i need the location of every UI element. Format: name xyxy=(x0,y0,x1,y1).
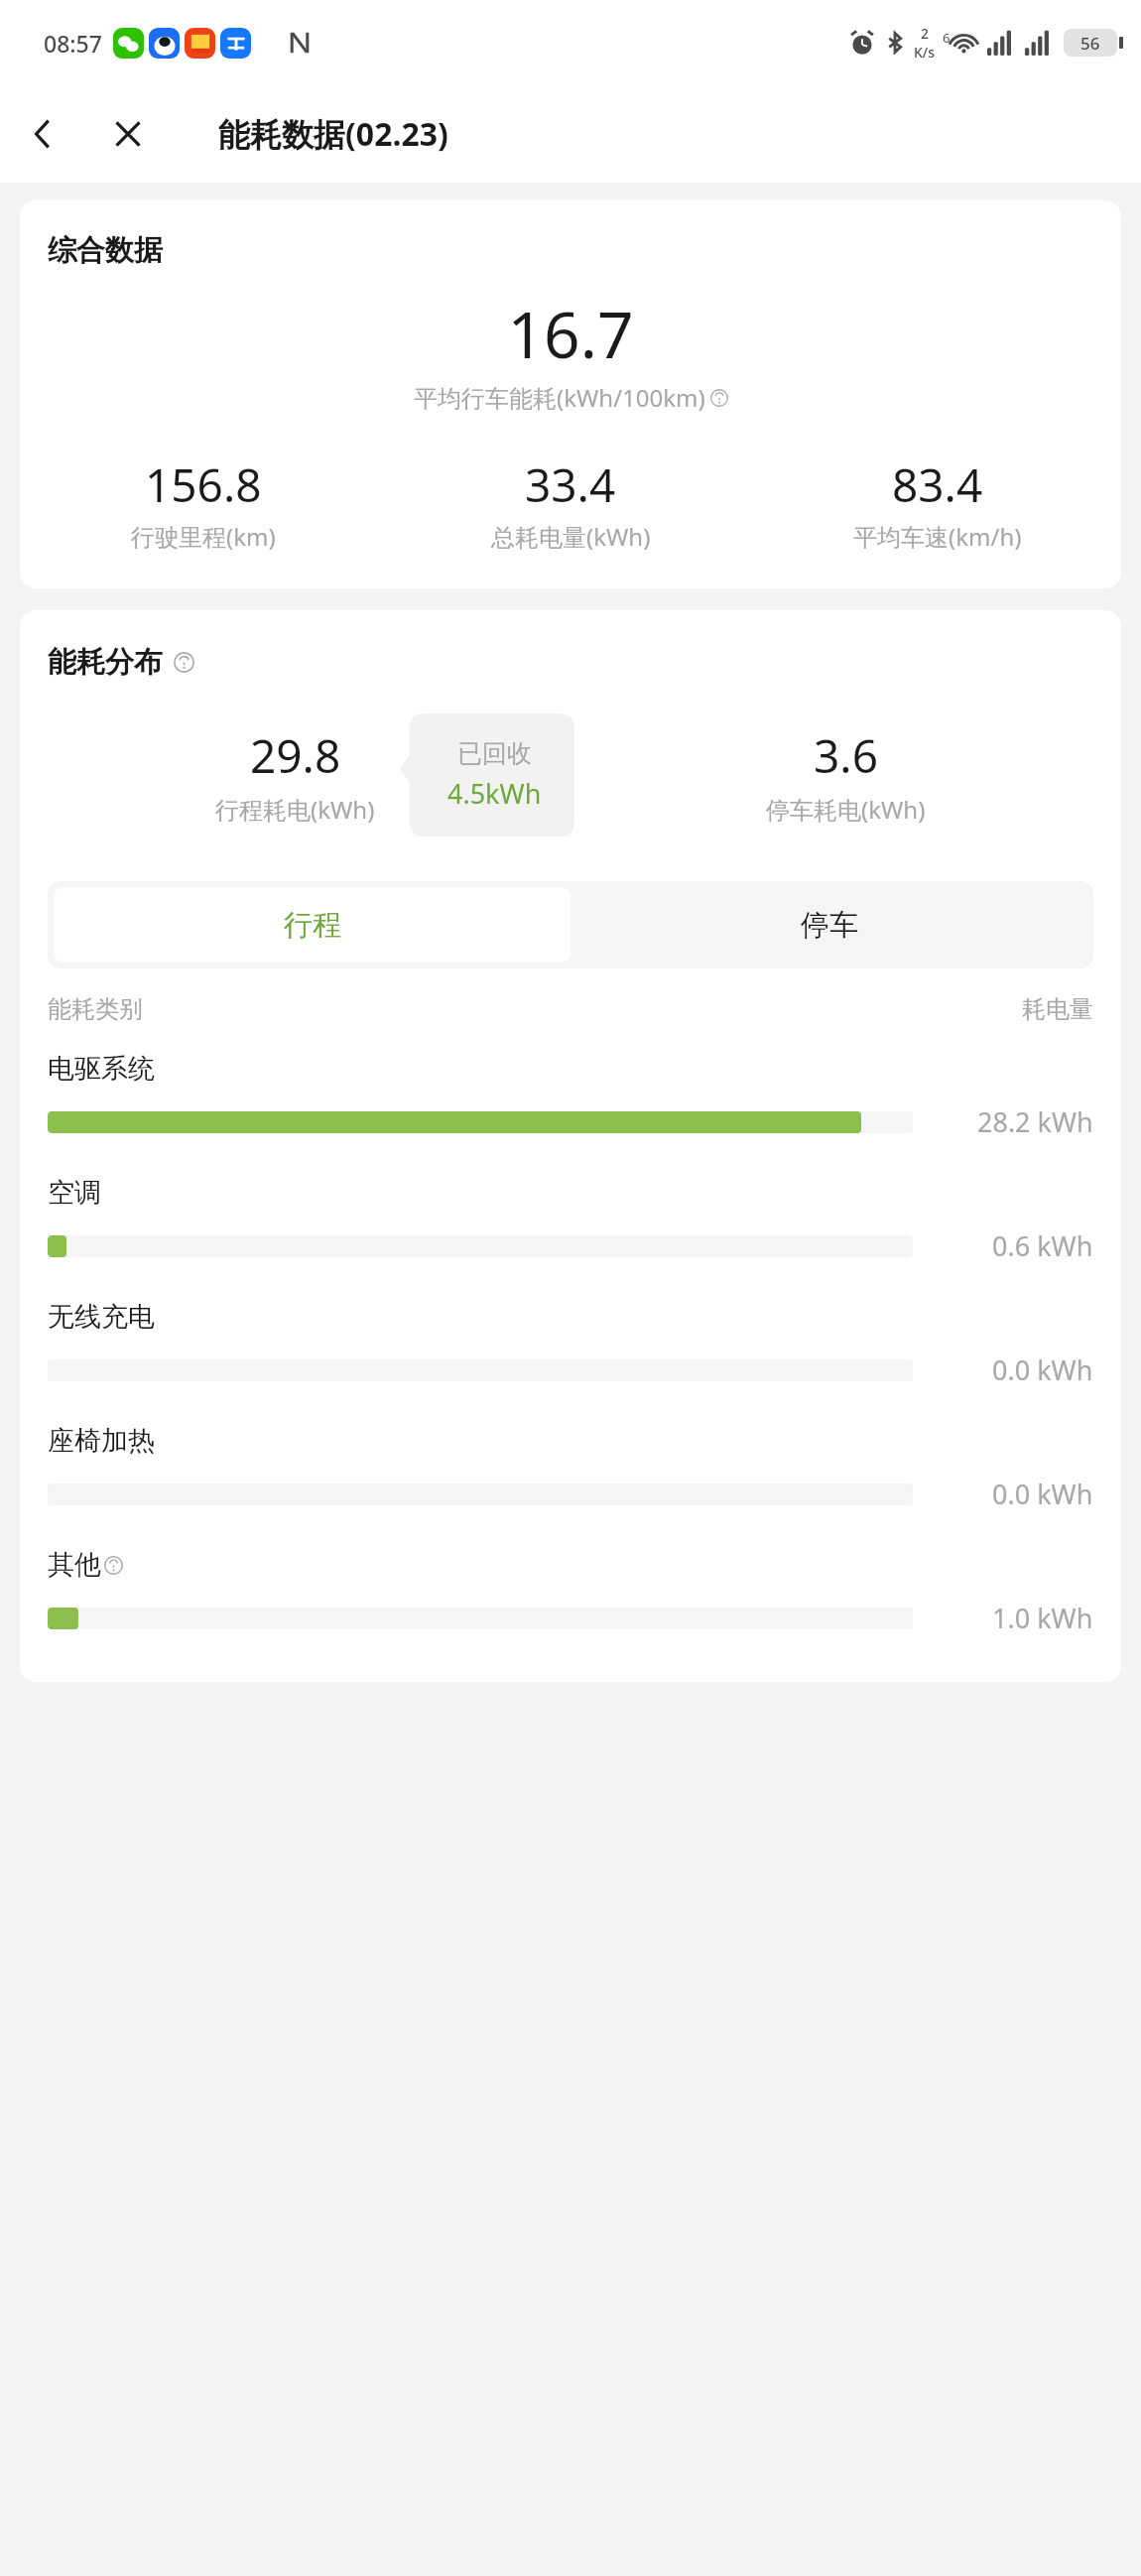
staticText: 能耗类别 xyxy=(48,994,143,1024)
staticText: 156.8 xyxy=(145,453,262,516)
staticText: 已回收 xyxy=(457,738,532,769)
staticText: 2 xyxy=(921,24,930,43)
staticText: 行程耗电(kWh) xyxy=(215,793,375,826)
staticText: 83.4 xyxy=(892,453,983,516)
staticText: 0.0 kWh xyxy=(992,1476,1093,1512)
button[interactable]: Back xyxy=(0,91,85,177)
staticText: 平均车速(km/h) xyxy=(853,520,1022,553)
staticText: 停车耗电(kWh) xyxy=(766,793,926,826)
staticText: 08:57 xyxy=(44,28,102,59)
staticText: 总耗电量(kWh) xyxy=(491,520,651,553)
staticText: 行程 xyxy=(284,907,341,944)
staticText: 平均行车能耗(kWh/100km) xyxy=(414,381,705,414)
staticText: 0.0 kWh xyxy=(992,1352,1093,1388)
staticText: 33.4 xyxy=(525,453,616,516)
staticText: 28.2 kWh xyxy=(977,1103,1093,1140)
staticText: 其他 xyxy=(48,1548,101,1582)
staticText: 4.5kWh xyxy=(447,775,542,812)
staticText: 停车 xyxy=(801,907,858,944)
staticText: 56 xyxy=(1080,32,1100,55)
button[interactable]: Close xyxy=(85,91,171,177)
staticText: 能耗分布 xyxy=(48,644,163,681)
staticText: 能耗数据(02.23) xyxy=(218,112,448,156)
staticText: 3.6 xyxy=(814,724,878,787)
button[interactable]: 停车 xyxy=(570,887,1087,963)
staticText: 行驶里程(km) xyxy=(131,520,276,553)
staticText: 0.6 kWh xyxy=(992,1227,1093,1264)
staticText: 16.7 xyxy=(20,291,1121,377)
staticText: 综合数据 xyxy=(48,232,163,269)
staticText: 无线充电 xyxy=(48,1300,155,1334)
staticText: K/s xyxy=(914,43,936,62)
staticText: 6 xyxy=(943,29,951,47)
staticText: 电驱系统 xyxy=(48,1052,155,1086)
staticText: 座椅加热 xyxy=(48,1424,155,1458)
button[interactable]: 已回收 xyxy=(400,713,574,837)
staticText: 29.8 xyxy=(250,724,341,787)
staticText: 空调 xyxy=(48,1176,101,1210)
staticText: 耗电量 xyxy=(1022,994,1093,1024)
staticText: 1.0 kWh xyxy=(992,1600,1093,1636)
button[interactable]: 行程 xyxy=(54,887,570,963)
